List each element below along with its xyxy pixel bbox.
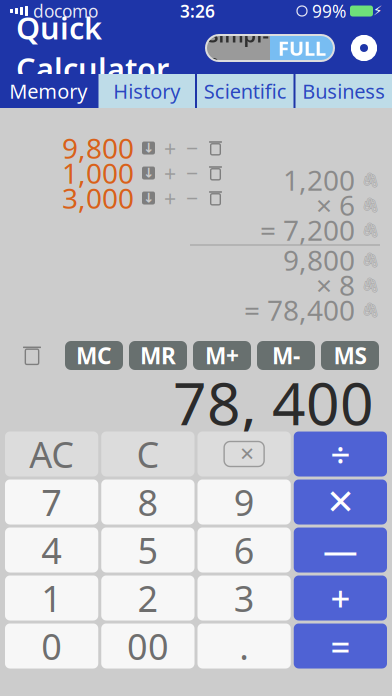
button[interactable]: 2 — [101, 575, 194, 620]
staticText: 🖇 — [361, 197, 380, 213]
staticText: MS — [333, 340, 366, 370]
button[interactable]: 8 — [101, 479, 194, 524]
button[interactable]: Settings — [344, 28, 384, 68]
staticText: ↓ — [143, 190, 154, 205]
staticText: 2 — [137, 574, 158, 622]
button[interactable]: 3 — [197, 575, 291, 620]
button[interactable]: Recall — [142, 140, 155, 155]
button[interactable]: MC — [65, 341, 123, 370]
staticText: M+ — [205, 340, 239, 370]
staticText: Simple — [207, 21, 268, 74]
button[interactable]: Recall — [142, 165, 155, 180]
staticText: − — [186, 184, 198, 212]
button[interactable]: 0 — [5, 623, 98, 668]
button[interactable]: Delete — [207, 189, 224, 206]
button[interactable]: ÷ — [294, 431, 387, 476]
staticText: = 7,200 — [260, 211, 355, 249]
staticText: M- — [272, 340, 300, 370]
button[interactable]: 5 — [101, 527, 194, 572]
staticText: ✕ — [326, 482, 355, 522]
staticText: ⚡︎ — [373, 3, 382, 18]
button[interactable]: − — [185, 184, 199, 212]
staticText: 78, 400 — [173, 363, 374, 441]
staticText: 🖇 — [361, 277, 380, 293]
staticText: MC — [76, 340, 112, 370]
staticText: 1,200 — [283, 161, 355, 199]
button[interactable]: — — [294, 527, 387, 572]
button[interactable]: 4 — [5, 527, 98, 572]
staticText: 🖇 — [361, 222, 380, 238]
staticText: + — [164, 134, 176, 162]
button[interactable]: Backspace — [197, 431, 291, 476]
button[interactable]: MS — [321, 341, 379, 370]
staticText: 7 — [41, 478, 62, 526]
staticText: C — [136, 430, 159, 478]
staticText: Scientific — [204, 78, 287, 104]
staticText: × 6 — [316, 186, 355, 224]
button[interactable]: 1 — [5, 575, 98, 620]
staticText: ÷ — [330, 431, 350, 477]
button[interactable]: Business — [295, 74, 392, 108]
staticText: + — [164, 159, 176, 187]
staticText: 4 — [41, 526, 62, 574]
button[interactable]: + — [294, 575, 387, 620]
button[interactable]: Clear memory list — [10, 338, 54, 372]
button[interactable]: + — [163, 184, 177, 212]
staticText: History — [113, 78, 180, 104]
staticText: 3 — [234, 574, 255, 622]
button[interactable]: Memory — [0, 74, 96, 108]
staticText: 🖇 — [361, 302, 380, 318]
staticText: + — [164, 184, 176, 212]
staticText: AC — [29, 430, 74, 478]
staticText: = 78,400 — [244, 291, 355, 329]
button[interactable]: Recall — [142, 190, 155, 205]
staticText: = — [330, 623, 350, 669]
button[interactable]: C — [101, 431, 194, 476]
staticText: + — [330, 575, 350, 621]
button[interactable]: M- — [257, 341, 315, 370]
staticText: 3:26 — [180, 0, 215, 22]
button[interactable]: + — [163, 134, 177, 162]
button[interactable]: = — [294, 623, 387, 668]
button[interactable]: 9 — [197, 479, 291, 524]
staticText: ✕ — [239, 443, 255, 465]
button[interactable]: Simple — [206, 35, 270, 61]
button[interactable]: MR — [129, 341, 187, 370]
button[interactable]: FULL — [270, 35, 334, 61]
button[interactable]: ✕ — [294, 479, 387, 524]
button[interactable]: . — [197, 623, 291, 668]
button[interactable]: Scientific — [197, 74, 293, 108]
button[interactable]: − — [185, 159, 199, 187]
staticText: 6 — [234, 526, 255, 574]
staticText: . — [239, 622, 249, 670]
button[interactable]: 6 — [197, 527, 291, 572]
staticText: 0 — [41, 622, 62, 670]
staticText: 9,800 — [62, 129, 134, 167]
staticText: 3,000 — [62, 179, 134, 217]
button[interactable]: 00 — [101, 623, 194, 668]
staticText: 99% — [307, 0, 346, 22]
button[interactable]: 7 — [5, 479, 98, 524]
staticText: ↓ — [143, 140, 154, 155]
staticText: 5 — [137, 526, 158, 574]
button[interactable]: Delete — [207, 164, 224, 181]
staticText: 9,800 — [283, 241, 355, 279]
button[interactable]: − — [185, 134, 199, 162]
staticText: 1,000 — [62, 154, 134, 192]
button[interactable]: History — [98, 74, 195, 108]
staticText: Business — [302, 78, 385, 104]
staticText: 00 — [127, 622, 169, 670]
staticText: docomo — [28, 0, 98, 22]
staticText: 9 — [234, 478, 255, 526]
button[interactable]: + — [163, 159, 177, 187]
button[interactable]: M+ — [193, 341, 251, 370]
staticText: × 8 — [316, 266, 355, 304]
staticText: ↓ — [143, 165, 154, 180]
staticText: 🖇 — [361, 172, 380, 188]
button[interactable]: Delete — [207, 139, 224, 156]
staticText: Quick Calculator — [16, 7, 169, 89]
staticText: — — [323, 527, 358, 573]
staticText: − — [186, 134, 198, 162]
button[interactable]: AC — [5, 431, 98, 476]
staticText: FULL — [278, 35, 326, 61]
